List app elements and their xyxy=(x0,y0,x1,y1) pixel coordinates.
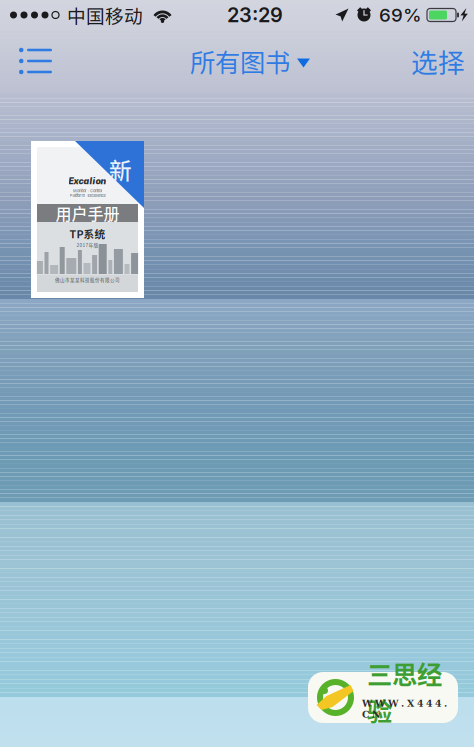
button[interactable]: 选择 xyxy=(411,30,474,92)
staticText: 用户手册 xyxy=(55,201,119,225)
staticText: 所有图书 xyxy=(190,43,290,79)
staticText: 三思经验 xyxy=(367,655,442,728)
button[interactable]: Excalion xyxy=(31,141,144,298)
staticText: 中国移动 xyxy=(67,1,143,28)
button[interactable]: 所有图书 xyxy=(165,30,310,92)
staticText: Excalion xyxy=(68,176,106,186)
staticText: 选择 xyxy=(411,42,465,80)
staticText: TP系统 xyxy=(69,226,105,241)
staticText: Monitor · Control xyxy=(73,188,102,193)
staticText: 69% xyxy=(379,4,422,26)
staticText: 佛山市某某科技股份有限公司 xyxy=(55,276,120,283)
staticText: 23:29 xyxy=(227,3,283,27)
staticText: 新 xyxy=(109,153,132,186)
staticText: 2017年版 xyxy=(76,241,98,248)
staticText: W W W . X 4 4 4 . C N xyxy=(362,698,447,720)
button[interactable]: List options xyxy=(0,30,64,92)
staticText: Platform Excellence xyxy=(69,193,105,198)
